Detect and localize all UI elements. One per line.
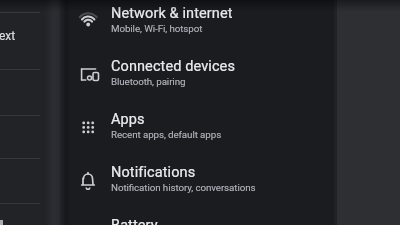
button[interactable]: Apps: [58, 106, 334, 159]
staticText: Battery: [111, 217, 158, 225]
staticText: Bluetooth, pairing: [111, 76, 186, 87]
button[interactable]: Battery: [58, 212, 334, 225]
staticText: Connected devices: [111, 58, 235, 75]
staticText: Network & internet: [111, 5, 233, 22]
staticText: ext: [0, 29, 16, 43]
button[interactable]: ext: [0, 0, 47, 225]
button[interactable]: Network & internet: [58, 0, 334, 53]
button[interactable]: Connected devices: [58, 53, 334, 106]
staticText: Recent apps, default apps: [111, 129, 222, 140]
staticText: Notification history, conversations: [111, 182, 256, 193]
staticText: Notifications: [111, 164, 196, 181]
staticText: Mobile, Wi-Fi, hotspot: [111, 23, 203, 34]
staticText: Apps: [111, 111, 145, 128]
button[interactable]: Notifications: [58, 159, 334, 212]
